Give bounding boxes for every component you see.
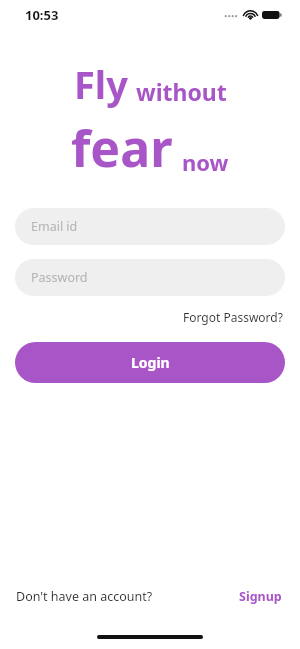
staticText: without (136, 76, 227, 107)
staticText: Don't have an account? (16, 588, 153, 605)
staticText: 10:53 (25, 6, 59, 24)
button[interactable]: Password (15, 259, 285, 296)
staticText: now (182, 147, 229, 177)
staticText: Login (131, 353, 170, 372)
button[interactable]: Login (15, 342, 285, 383)
staticText: Signup (239, 588, 282, 605)
staticText: Fly (74, 58, 128, 110)
button[interactable]: Signup (237, 584, 284, 609)
button[interactable]: Email id (15, 208, 285, 245)
button[interactable]: Forgot Password? (181, 306, 285, 328)
staticText: Password (31, 269, 88, 286)
staticText: Forgot Password? (183, 309, 283, 325)
staticText: fear (71, 114, 173, 182)
staticText: Email id (31, 218, 78, 235)
